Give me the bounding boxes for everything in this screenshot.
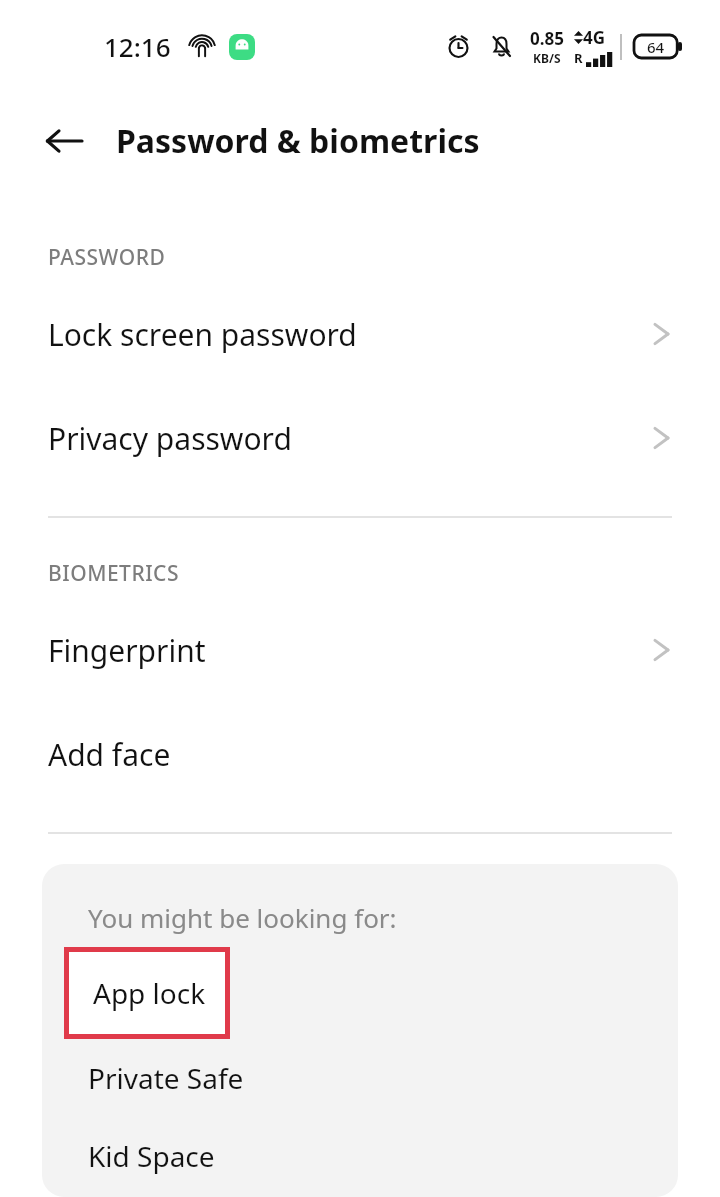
button[interactable]: Private Safe [42, 1039, 678, 1117]
staticText: Fingerprint [48, 630, 206, 671]
staticText: 0.85 [530, 27, 564, 50]
button[interactable]: Add face [0, 702, 720, 806]
staticText: PASSWORD [48, 243, 166, 272]
staticText: 64 [647, 37, 665, 57]
staticText: Kid Space [88, 1137, 215, 1175]
staticText: Private Safe [88, 1059, 244, 1097]
button[interactable]: Back [34, 111, 94, 171]
staticText: Password & biometrics [116, 119, 480, 163]
staticText: You might be looking for: [88, 900, 397, 935]
staticText: Lock screen password [48, 314, 357, 355]
staticText: 12:16 [104, 29, 171, 64]
button[interactable]: Fingerprint [0, 598, 720, 702]
staticText: Add face [48, 734, 171, 775]
button[interactable]: Lock screen password [0, 282, 720, 386]
button[interactable]: App lock [69, 952, 225, 1034]
staticText: KB/S [533, 50, 561, 66]
staticText: Privacy password [48, 418, 292, 459]
button[interactable]: Kid Space [42, 1117, 678, 1195]
staticText: R [574, 49, 583, 67]
staticText: BIOMETRICS [48, 559, 179, 588]
staticText: 4G [583, 26, 606, 49]
staticText: App lock [93, 974, 206, 1012]
button[interactable]: Privacy password [0, 386, 720, 490]
